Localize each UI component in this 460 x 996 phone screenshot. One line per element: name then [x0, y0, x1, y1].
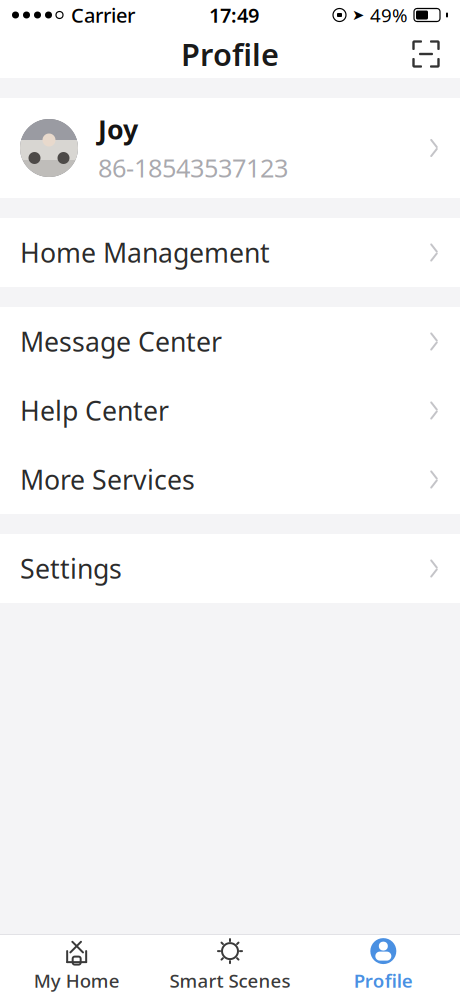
staticText: Smart Scenes: [169, 968, 290, 993]
button[interactable]: Settings: [0, 534, 460, 603]
staticText: 86-18543537123: [98, 151, 288, 184]
button[interactable]: Help Center: [0, 376, 460, 445]
staticText: 17:49: [209, 2, 259, 28]
staticText: Carrier: [71, 2, 135, 28]
button[interactable]: Profile: [307, 935, 460, 996]
staticText: Joy: [98, 111, 138, 147]
staticText: Profile: [181, 34, 279, 74]
staticText: ➤: [352, 7, 364, 23]
button[interactable]: My Home: [0, 935, 153, 996]
button[interactable]: Home Management: [0, 218, 460, 287]
staticText: Help Center: [20, 393, 169, 428]
button[interactable]: Smart Scenes: [153, 935, 307, 996]
button[interactable]: More Services: [0, 445, 460, 514]
staticText: 49%: [370, 3, 408, 27]
button[interactable]: Message Center: [0, 307, 460, 376]
staticText: More Services: [20, 462, 195, 497]
staticText: My Home: [34, 968, 120, 993]
staticText: Settings: [20, 551, 122, 586]
staticText: Message Center: [20, 324, 222, 359]
button[interactable]: Scan QR code: [404, 32, 448, 76]
button[interactable]: Joy: [0, 98, 460, 198]
staticText: Profile: [354, 968, 413, 993]
staticText: Home Management: [20, 235, 270, 270]
